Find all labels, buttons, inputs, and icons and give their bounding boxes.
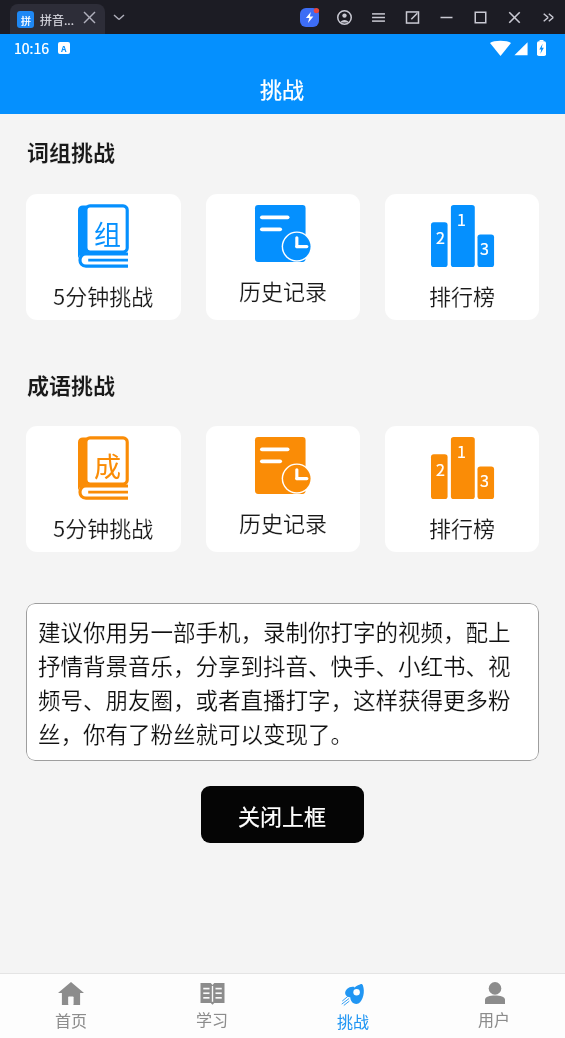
staticText: 历史记录 [239,506,328,538]
staticText: 2 [436,457,445,480]
staticText: 挑战 [260,72,305,104]
staticText: A [61,43,67,54]
staticText: 1 [457,439,466,462]
button[interactable]: 关闭上框 [201,786,364,843]
button[interactable]: Menu [361,0,395,34]
staticText: 拼 [21,13,31,27]
button[interactable]: Assistant [292,6,327,29]
staticText: 5分钟挑战 [53,511,154,543]
button[interactable]: Tab [10,4,105,34]
button[interactable]: 2 [385,426,539,552]
button[interactable]: Close window [497,0,531,34]
button[interactable]: Maximize [463,0,497,34]
staticText: 学习 [196,1007,229,1030]
button[interactable]: Tab list [114,12,124,22]
staticText: 3 [480,468,489,491]
button[interactable]: 成 [26,426,181,552]
staticText: 排行榜 [429,279,496,311]
staticText: 用户 [478,1007,511,1030]
staticText: 关闭上框 [238,799,327,831]
staticText: 挑战 [337,1009,370,1032]
staticText: 10:16 [14,38,49,58]
button[interactable]: Detach [395,0,429,34]
staticText: 5分钟挑战 [53,279,154,311]
staticText: 首页 [55,1008,88,1031]
button[interactable]: Account [327,0,361,34]
staticText: 词组挑战 [27,135,116,167]
staticText: 成语挑战 [27,368,116,400]
button[interactable]: 历史记录 [206,194,360,320]
button[interactable]: More options [531,0,565,34]
button[interactable]: 挑战 [283,974,424,1038]
staticText: 建议你用另一部手机，录制你打字的视频，配上抒情背景音乐，分享到抖音、快手、小红书… [38,615,527,749]
button[interactable]: Close tab [84,12,95,23]
staticText: 1 [457,207,466,230]
staticText: 历史记录 [239,274,328,306]
button[interactable]: 学习 [142,974,283,1038]
staticText: 排行榜 [429,511,496,543]
button[interactable]: 历史记录 [206,426,360,552]
button[interactable]: 用户 [424,974,565,1038]
staticText: 3 [480,236,489,259]
button[interactable]: Minimize [429,0,463,34]
staticText: 拼音... [40,11,75,28]
staticText: 组 [94,214,121,253]
staticText: 2 [436,225,445,248]
staticText: 成 [94,446,121,485]
button[interactable]: 组 [26,194,181,320]
button[interactable]: 首页 [0,974,142,1038]
button[interactable]: 2 [385,194,539,320]
